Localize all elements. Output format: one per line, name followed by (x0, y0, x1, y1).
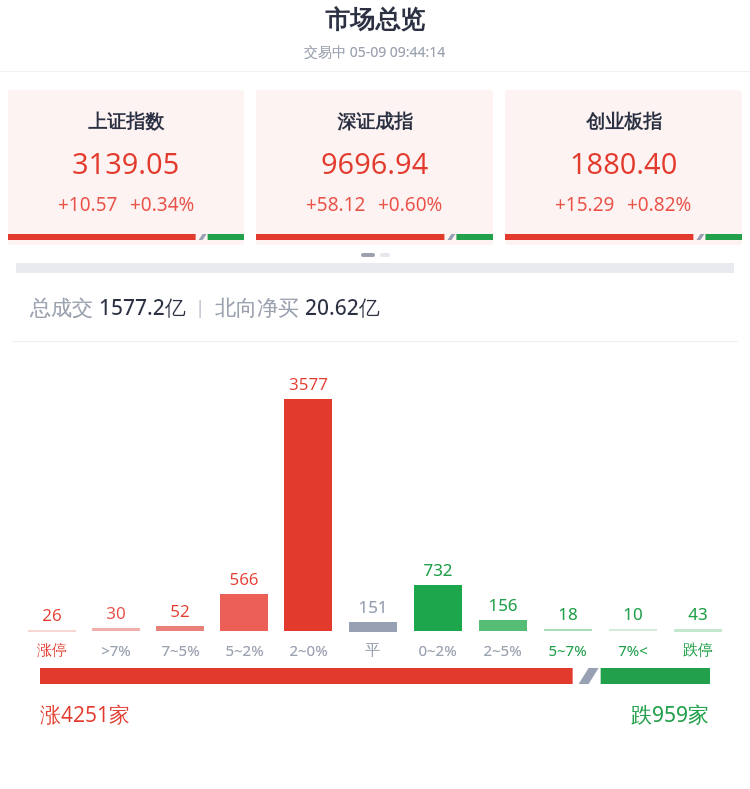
button[interactable]: 3577 (276, 372, 340, 660)
staticText: +58.12 (306, 191, 366, 217)
button[interactable]: 创业板指 (505, 90, 742, 245)
staticText: 跌停 (683, 641, 713, 660)
button[interactable]: 10 (600, 602, 665, 660)
staticText: 0~2% (418, 640, 457, 660)
staticText: 上证指数 (88, 110, 164, 134)
staticText: +0.34% (130, 191, 195, 217)
staticText: 1577.2亿 (99, 293, 186, 322)
staticText: >7% (101, 640, 131, 660)
staticText: 总成交 (30, 293, 99, 322)
staticText: 20.62亿 (305, 293, 380, 322)
staticText: 交易中 05-09 09:44:14 (304, 42, 446, 61)
staticText: 7~5% (161, 640, 200, 660)
staticText: 平 (365, 641, 380, 660)
staticText: | (186, 295, 215, 320)
staticText: 2~5% (483, 640, 522, 660)
button[interactable]: 156 (470, 593, 535, 660)
staticText: 3139.05 (72, 143, 180, 182)
staticText: 52 (170, 599, 190, 622)
button[interactable]: 26 (20, 603, 84, 660)
staticText: 市场总览 (325, 4, 425, 35)
staticText: 5~2% (225, 640, 264, 660)
staticText: 151 (358, 595, 388, 618)
staticText: 9696.94 (321, 143, 429, 182)
staticText: +10.57 (58, 191, 118, 217)
staticText: 涨4251家 (40, 700, 131, 729)
staticText: 18 (558, 602, 578, 625)
button[interactable]: 732 (405, 558, 470, 660)
staticText: 1880.40 (570, 143, 678, 182)
staticText: 创业板指 (586, 110, 662, 134)
staticText: 5~7% (548, 640, 587, 660)
staticText: 30 (106, 601, 126, 624)
button[interactable]: 566 (212, 567, 276, 660)
button[interactable]: 52 (148, 599, 212, 660)
staticText: 26 (42, 603, 62, 626)
staticText: 2~0% (289, 640, 328, 660)
button[interactable]: 30 (84, 601, 148, 660)
staticText: +15.29 (555, 191, 615, 217)
button[interactable]: 43 (665, 602, 730, 660)
button[interactable]: 深证成指 (256, 90, 493, 245)
staticText: 156 (488, 593, 518, 616)
staticText: 北向净买 (215, 293, 305, 322)
staticText: 深证成指 (337, 110, 413, 134)
staticText: 涨停 (37, 641, 67, 660)
staticText: 43 (688, 602, 708, 625)
button[interactable]: 151 (340, 595, 405, 660)
staticText: 732 (423, 558, 453, 581)
button[interactable]: 上证指数 (8, 90, 244, 245)
staticText: 3577 (289, 372, 328, 395)
staticText: +0.82% (627, 191, 692, 217)
staticText: 7%< (618, 640, 648, 660)
staticText: 跌959家 (631, 700, 710, 729)
staticText: 566 (229, 567, 259, 590)
staticText: 10 (623, 602, 643, 625)
staticText: +0.60% (378, 191, 443, 217)
button[interactable]: 18 (535, 602, 600, 660)
